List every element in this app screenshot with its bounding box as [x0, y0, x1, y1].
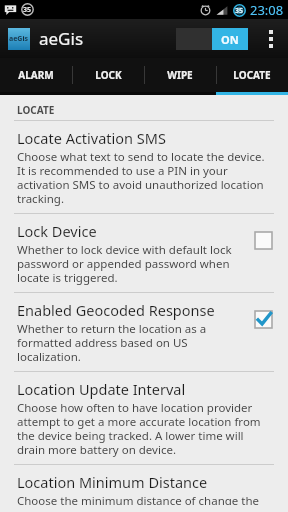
- button[interactable]: Checked: [248, 304, 278, 334]
- staticText: Location Update Interval: [17, 379, 186, 399]
- staticText: LOCATE: [17, 103, 55, 117]
- button[interactable]: Location Minimum Distance: [0, 465, 288, 512]
- staticText: Choose what text to send to locate the d…: [17, 149, 272, 206]
- staticText: Choose the minimum distance of change th…: [17, 493, 272, 505]
- staticText: ALARM: [18, 68, 54, 82]
- staticText: aeGis: [39, 27, 84, 50]
- staticText: WIPE: [167, 68, 193, 82]
- staticText: LOCK: [95, 68, 122, 82]
- staticText: Choose how often to have location provid…: [17, 400, 272, 457]
- staticText: 35: [235, 6, 244, 16]
- button[interactable]: WIPE: [144, 58, 216, 92]
- staticText: Lock Device: [17, 221, 97, 241]
- staticText: LOCATE: [233, 68, 271, 82]
- staticText: ON: [221, 32, 239, 47]
- staticText: 23:08: [250, 1, 284, 19]
- staticText: Locate Activation SMS: [17, 128, 166, 148]
- staticText: Whether to return the location as a form…: [17, 321, 242, 364]
- button[interactable]: Lock Device: [0, 214, 288, 292]
- staticText: Whether to lock device with default lock…: [17, 242, 242, 285]
- button[interactable]: Location Update Interval: [0, 372, 288, 464]
- staticText: Location Minimum Distance: [17, 472, 208, 492]
- staticText: 35: [23, 5, 32, 15]
- button[interactable]: LOCATE: [216, 58, 288, 92]
- button[interactable]: LOCK: [72, 58, 144, 92]
- staticText: Enabled Geocoded Response: [17, 300, 215, 320]
- button[interactable]: Enabled Geocoded Response: [0, 293, 288, 371]
- button[interactable]: ON: [176, 28, 248, 50]
- button[interactable]: ALARM: [0, 58, 72, 92]
- staticText: aeGis: [9, 34, 29, 44]
- button[interactable]: Unchecked: [248, 225, 278, 255]
- button[interactable]: Locate Activation SMS: [0, 121, 288, 213]
- button[interactable]: More options: [258, 19, 284, 58]
